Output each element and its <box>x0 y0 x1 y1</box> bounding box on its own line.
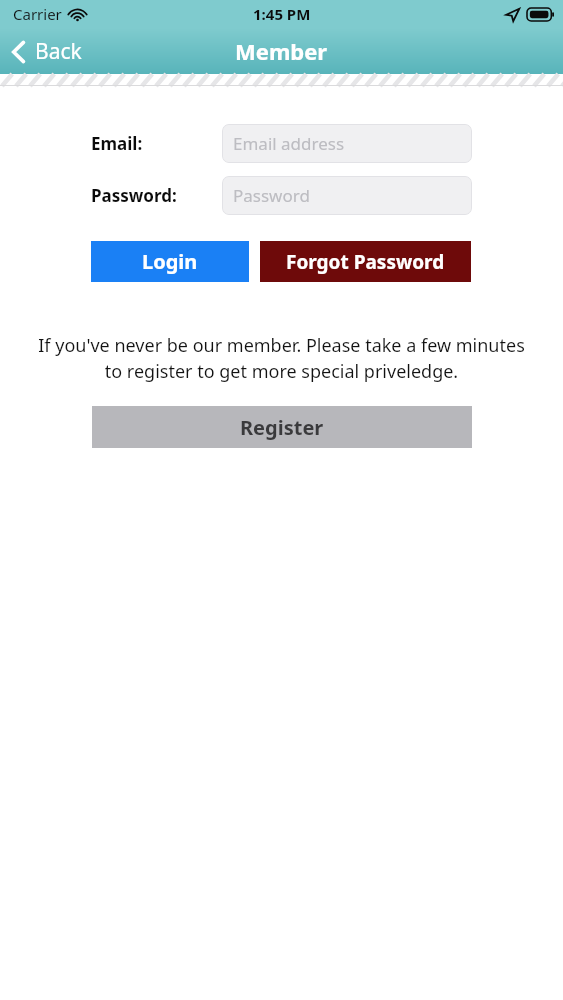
staticText: Carrier <box>13 4 62 24</box>
staticText: Password: <box>91 184 177 207</box>
staticText: Register <box>240 414 324 441</box>
button[interactable]: Login <box>91 241 249 282</box>
button[interactable]: Password <box>222 176 472 215</box>
staticText: 1:45 PM <box>253 4 311 24</box>
button[interactable]: Register <box>92 406 472 448</box>
button[interactable]: Forgot Password <box>260 241 471 282</box>
staticText: Login <box>142 248 198 275</box>
staticText: Email: <box>91 132 143 155</box>
staticText: Member <box>235 36 328 66</box>
staticText: Password <box>233 184 310 207</box>
staticText: If you've never be our member. Please ta… <box>30 333 533 384</box>
button[interactable]: Email address <box>222 124 472 163</box>
staticText: Forgot Password <box>286 249 445 275</box>
button[interactable]: Back <box>0 33 96 70</box>
staticText: Back <box>35 37 82 66</box>
staticText: Email address <box>233 132 345 155</box>
